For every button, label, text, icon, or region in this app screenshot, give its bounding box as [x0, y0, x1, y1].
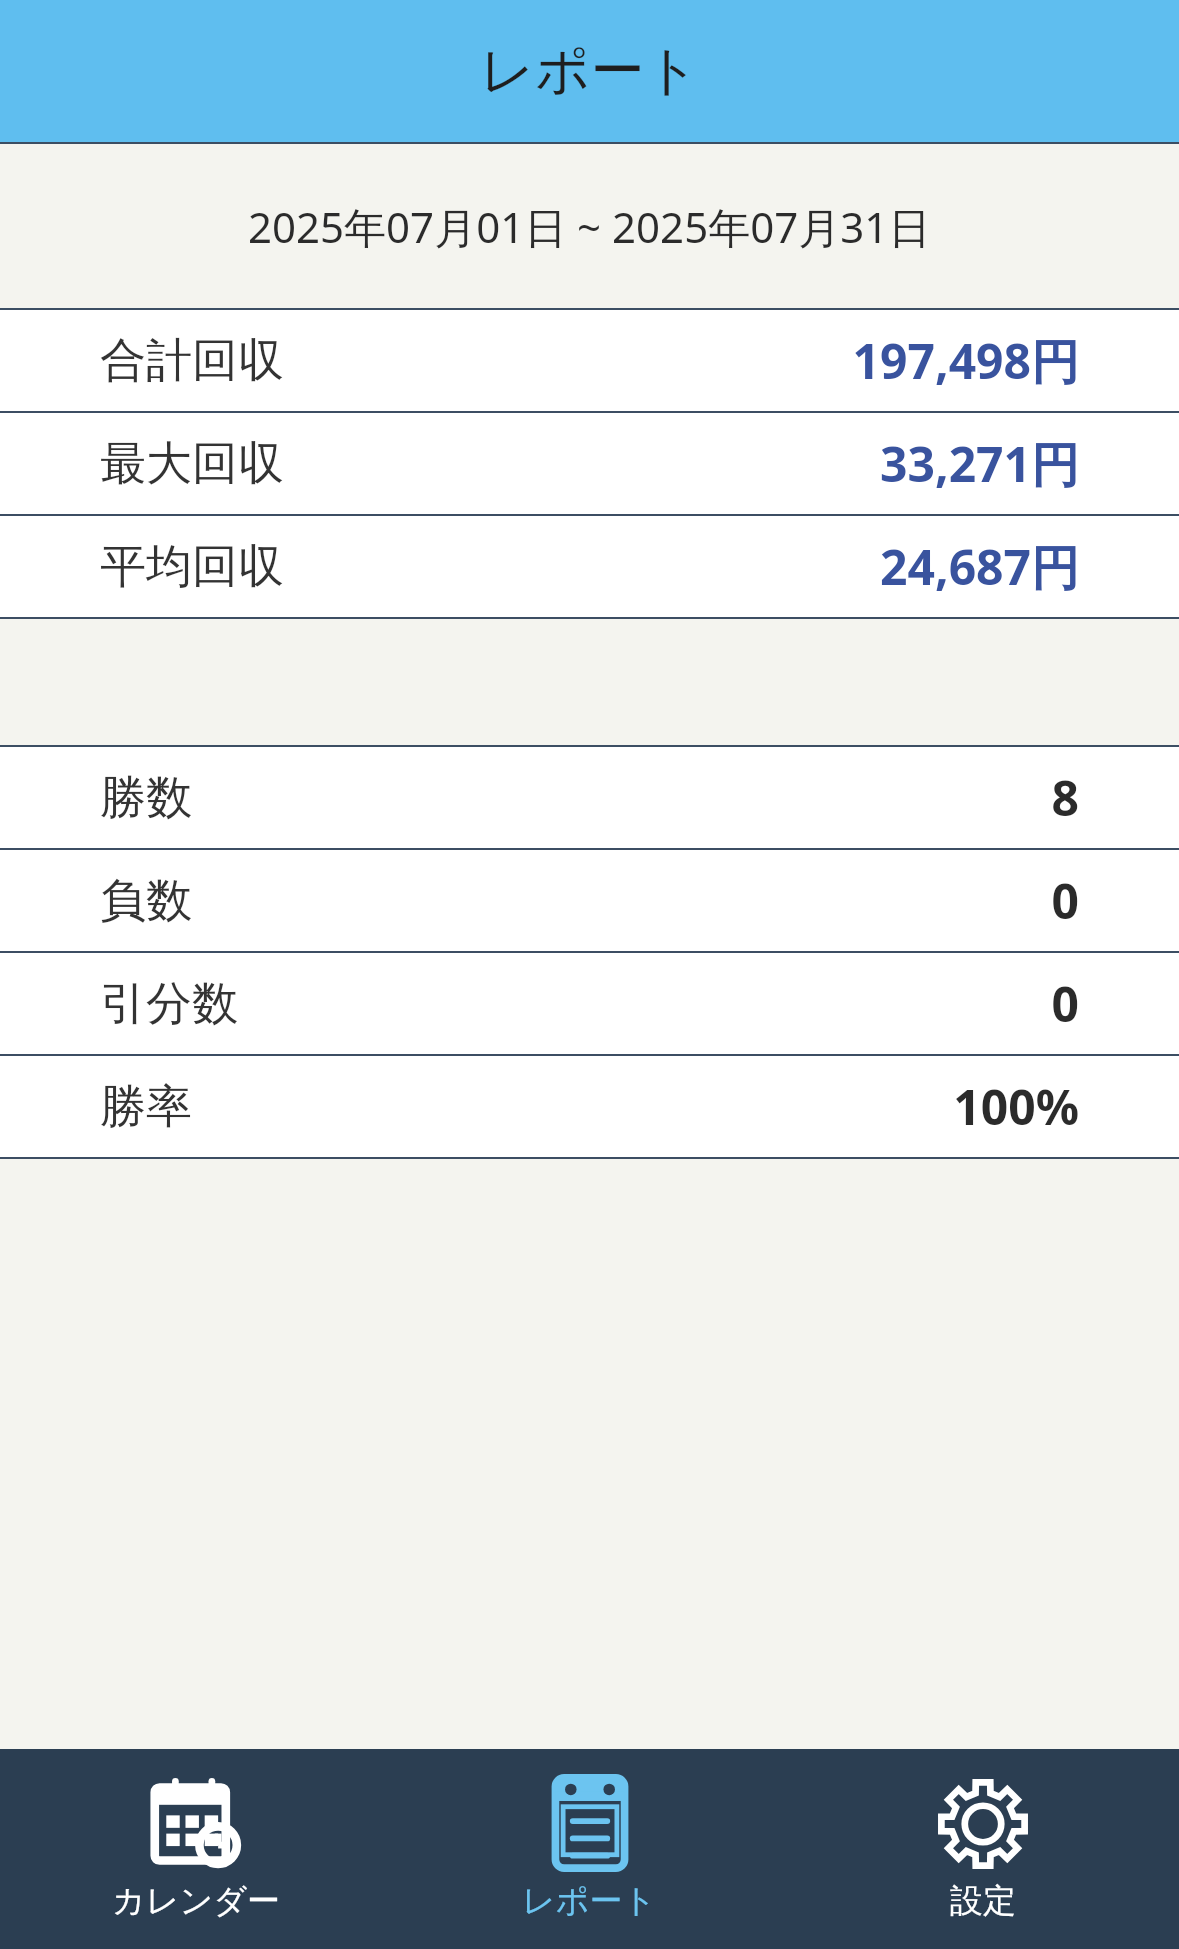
button[interactable]: 最大回収 [0, 413, 1179, 514]
staticText: カレンダー [112, 1880, 281, 1922]
staticText: 24,687円 [880, 534, 1079, 600]
button[interactable]: レポート [393, 1749, 786, 1949]
button[interactable]: 平均回収 [0, 516, 1179, 617]
staticText: レポート [522, 1880, 657, 1922]
button[interactable]: 勝率 [0, 1056, 1179, 1157]
staticText: 引分数 [100, 975, 238, 1033]
staticText: 設定 [950, 1880, 1016, 1922]
staticText: 100% [953, 1074, 1079, 1139]
staticText: 勝数 [100, 769, 192, 827]
button[interactable]: 合計回収 [0, 310, 1179, 411]
button[interactable]: 負数 [0, 850, 1179, 951]
button[interactable]: 勝数 [0, 747, 1179, 848]
staticText: 0 [1051, 971, 1079, 1036]
staticText: 8 [1051, 765, 1079, 830]
button[interactable]: 引分数 [0, 953, 1179, 1054]
staticText: 0 [1051, 868, 1079, 933]
staticText: 負数 [100, 872, 192, 930]
staticText: 勝率 [100, 1078, 192, 1136]
staticText: 33,271円 [880, 431, 1079, 497]
button[interactable]: カレンダー [0, 1749, 393, 1949]
button[interactable]: 設定 [786, 1749, 1179, 1949]
staticText: 合計回収 [100, 332, 284, 390]
staticText: 2025年07月01日 ~ 2025年07月31日 [248, 198, 931, 255]
staticText: レポート [480, 37, 700, 105]
staticText: 197,498円 [852, 328, 1079, 394]
staticText: 平均回収 [100, 538, 284, 596]
staticText: 最大回収 [100, 435, 284, 493]
